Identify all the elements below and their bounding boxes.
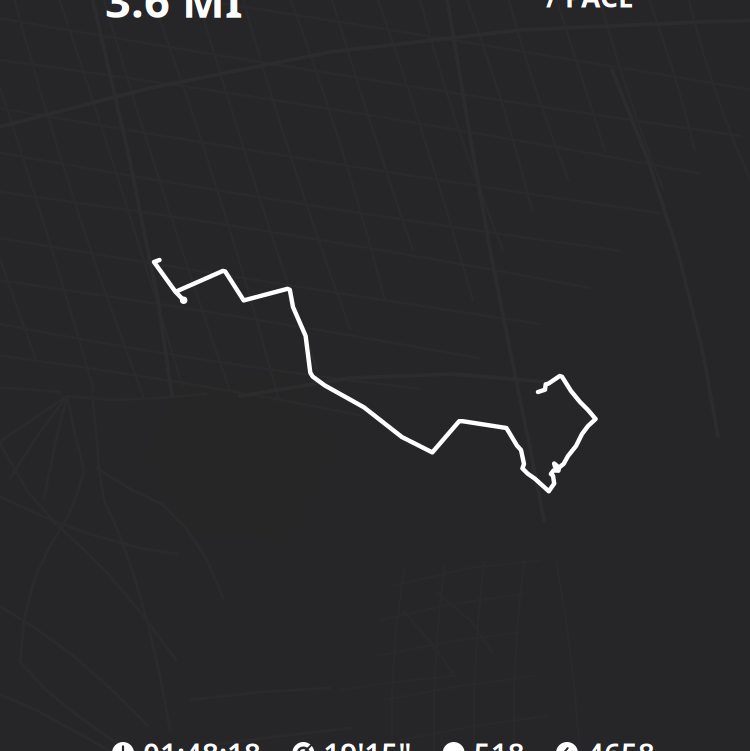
staticText: 3.6 MI [105, 0, 243, 30]
staticText: 4658 [587, 733, 655, 751]
staticText: / PACE [546, 0, 634, 15]
staticText: 518 [474, 733, 525, 751]
staticText: 19'15" [323, 733, 411, 751]
staticText: 01:48:18 [143, 733, 261, 751]
